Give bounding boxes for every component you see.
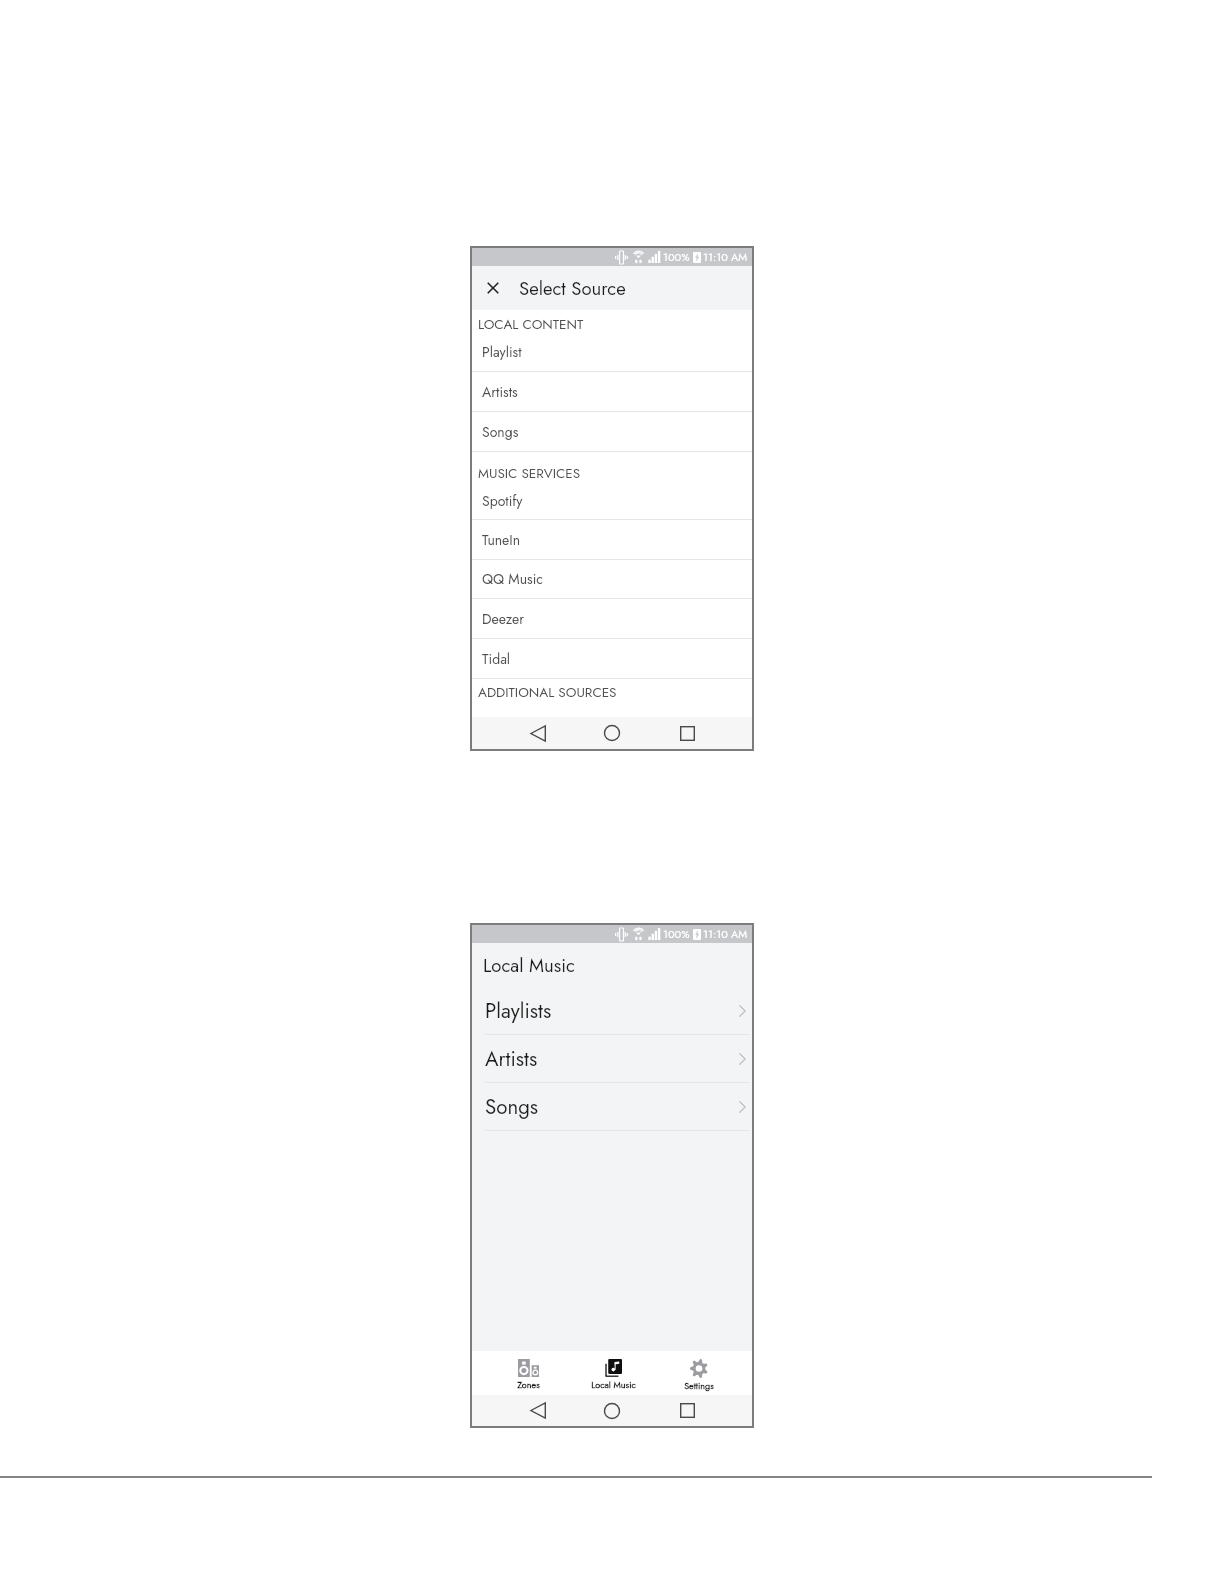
button[interactable]: Close — [481, 276, 505, 300]
staticText: Select Source — [519, 275, 626, 302]
button[interactable]: Back — [525, 1395, 550, 1426]
staticText: 100% — [663, 926, 690, 942]
staticText: TuneIn — [482, 530, 521, 550]
button[interactable]: QQ Music — [472, 560, 752, 599]
button[interactable]: Home — [599, 1395, 624, 1426]
staticText: Tidal — [482, 649, 511, 669]
button[interactable]: Songs — [472, 412, 752, 452]
button[interactable]: Back — [525, 717, 550, 749]
button[interactable]: Songs — [472, 1083, 752, 1131]
staticText: 100% — [663, 249, 690, 265]
staticText: Settings — [684, 1379, 714, 1392]
button[interactable]: Recent apps — [675, 717, 700, 749]
button[interactable]: Zones — [486, 1351, 571, 1395]
staticText: LOCAL CONTENT — [478, 315, 584, 335]
staticText: QQ Music — [482, 569, 543, 589]
button[interactable]: Artists — [472, 1035, 752, 1083]
button[interactable]: Local Music — [571, 1351, 656, 1395]
button[interactable]: Spotify — [472, 482, 752, 520]
button[interactable]: Deezer — [472, 599, 752, 639]
staticText: Zones — [517, 1378, 540, 1391]
staticText: Deezer — [482, 609, 524, 629]
staticText: Songs — [485, 1092, 539, 1122]
button[interactable]: Home — [599, 717, 624, 749]
staticText: Playlists — [485, 996, 552, 1026]
staticText: Local Music — [483, 952, 575, 979]
staticText: Artists — [482, 382, 518, 402]
staticText: Local Music — [591, 1378, 636, 1391]
button[interactable]: Recent apps — [675, 1395, 700, 1426]
button[interactable]: Settings — [656, 1351, 741, 1395]
staticText: Artists — [485, 1044, 538, 1074]
staticText: Songs — [482, 422, 519, 442]
staticText: ADDITIONAL SOURCES — [478, 683, 617, 703]
button[interactable]: Playlist — [472, 332, 752, 372]
button[interactable]: TuneIn — [472, 520, 752, 560]
button[interactable]: Artists — [472, 372, 752, 412]
staticText: MUSIC SERVICES — [478, 464, 581, 484]
button[interactable]: Playlists — [472, 987, 752, 1035]
button[interactable]: Tidal — [472, 639, 752, 679]
staticText: 11:10 AM — [703, 926, 748, 942]
staticText: Playlist — [482, 342, 522, 362]
staticText: 11:10 AM — [703, 249, 748, 265]
staticText: Spotify — [482, 491, 523, 511]
